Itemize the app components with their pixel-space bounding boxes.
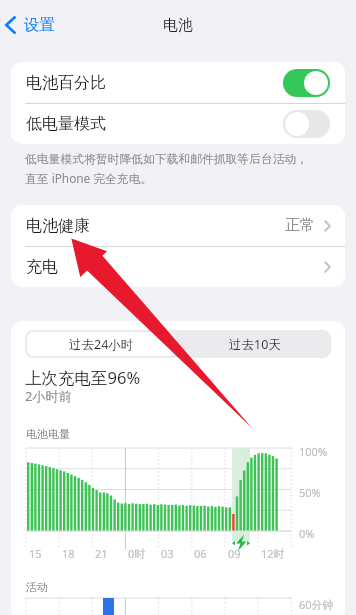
staticText: 18 — [62, 546, 75, 561]
staticText: 低电量模式将暂时降低如下载和邮件抓取等后台活动， — [25, 152, 309, 167]
staticText: 0% — [299, 526, 315, 541]
staticText: 电池电量 — [26, 427, 70, 441]
staticText: 03 — [161, 546, 174, 561]
staticText: 设置 — [24, 15, 55, 35]
button[interactable]: 充电 — [11, 247, 345, 287]
staticText: 0时 — [128, 546, 146, 561]
staticText: 06 — [194, 546, 207, 561]
staticText: 09 — [228, 546, 241, 561]
staticText: 上次充电至96% — [25, 366, 141, 389]
button[interactable]: 设置 — [2, 9, 58, 41]
staticText: 2小时前 — [25, 387, 72, 405]
staticText: 直至 iPhone 完全充电。 — [25, 170, 153, 186]
staticText: 12时 — [261, 546, 285, 561]
staticText: 过去10天 — [229, 336, 281, 353]
staticText: 21 — [95, 546, 108, 561]
staticText: 60分钟 — [299, 597, 334, 612]
button[interactable]: Off — [283, 110, 330, 138]
button[interactable]: 电池百分比 — [11, 62, 345, 103]
staticText: 电池健康 — [26, 216, 90, 236]
other: Annotation arrow — [0, 0, 356, 615]
staticText: 活动 — [26, 580, 48, 594]
staticText: 电池百分比 — [26, 73, 106, 93]
button[interactable]: 过去10天 — [178, 330, 331, 358]
button[interactable]: 电池健康 — [11, 205, 345, 246]
staticText: 过去24小时 — [69, 336, 134, 353]
staticText: 15 — [29, 546, 42, 561]
button[interactable]: On — [283, 69, 330, 97]
staticText: 电池 — [163, 16, 193, 35]
staticText: 充电 — [26, 257, 58, 277]
staticText: 100% — [299, 444, 328, 459]
staticText: 低电量模式 — [26, 114, 106, 134]
button[interactable]: 过去24小时 — [27, 332, 176, 356]
staticText: 正常 — [285, 216, 315, 235]
button[interactable]: 低电量模式 — [11, 104, 345, 144]
staticText: 50% — [299, 485, 321, 500]
